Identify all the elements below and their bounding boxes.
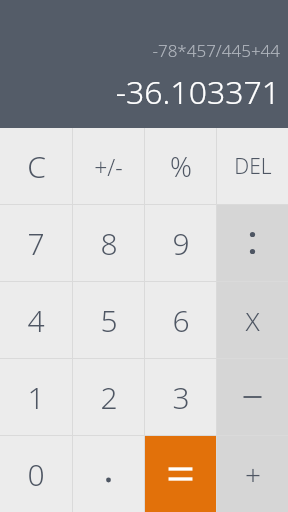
staticText: 6 — [172, 300, 190, 341]
staticText: 9 — [172, 223, 190, 264]
button[interactable]: Equals — [145, 436, 216, 512]
button[interactable]: 3 — [145, 359, 216, 435]
button[interactable]: Plus — [217, 436, 288, 512]
staticText: 7 — [27, 223, 45, 264]
button[interactable]: 0 — [0, 436, 72, 512]
staticText: C — [27, 146, 46, 187]
staticText: 0 — [27, 454, 45, 495]
staticText: 1 — [27, 377, 45, 418]
staticText: % — [170, 148, 192, 185]
button[interactable]: 5 — [73, 282, 144, 358]
staticText: +/- — [94, 151, 123, 182]
staticText: + — [245, 455, 261, 493]
button[interactable]: Toggle sign — [73, 128, 144, 204]
button[interactable]: Delete — [217, 128, 288, 204]
staticText: 8 — [100, 223, 118, 264]
button[interactable]: 8 — [73, 205, 144, 281]
button[interactable]: Multiply — [217, 282, 288, 358]
button[interactable]: Divide — [217, 205, 288, 281]
button[interactable]: Minus — [217, 359, 288, 435]
button[interactable]: 6 — [145, 282, 216, 358]
button[interactable]: Percent — [145, 128, 216, 204]
staticText: 4 — [27, 300, 45, 341]
button[interactable]: 9 — [145, 205, 216, 281]
button[interactable]: Decimal point — [73, 436, 144, 512]
staticText: -36.103371 — [115, 70, 280, 114]
staticText: DEL — [234, 152, 272, 181]
staticText: 3 — [172, 377, 190, 418]
staticText: 5 — [100, 300, 118, 341]
button[interactable]: 1 — [0, 359, 72, 435]
staticText: 2 — [100, 377, 118, 418]
staticText: -78*457/445+44 — [152, 39, 280, 62]
button[interactable]: 2 — [73, 359, 144, 435]
staticText: X — [245, 303, 260, 338]
button[interactable]: Clear — [0, 128, 72, 204]
button[interactable]: 7 — [0, 205, 72, 281]
button[interactable]: 4 — [0, 282, 72, 358]
